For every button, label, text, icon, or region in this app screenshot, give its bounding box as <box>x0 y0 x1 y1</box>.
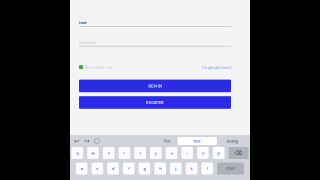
button[interactable]: Paste <box>93 136 101 145</box>
button[interactable]: o <box>197 147 209 159</box>
button[interactable]: t <box>134 147 146 159</box>
staticText: l <box>207 166 208 171</box>
staticText: s <box>96 166 98 171</box>
staticText: a <box>81 166 83 171</box>
button[interactable]: REGISTER <box>79 96 231 109</box>
button[interactable]: l <box>201 162 213 174</box>
staticText: u <box>170 150 172 156</box>
button[interactable]: Redo <box>83 136 91 145</box>
staticText: Test <box>163 138 170 144</box>
staticText: o <box>202 150 204 156</box>
staticText: SIGN IN <box>148 83 162 88</box>
button[interactable]: ⌫ <box>228 147 248 159</box>
button[interactable]: e <box>103 147 114 159</box>
staticText: g <box>143 166 145 171</box>
button[interactable]: Forgot password <box>202 64 231 70</box>
button[interactable]: i <box>181 147 193 159</box>
staticText: y <box>155 150 157 156</box>
button[interactable]: g <box>139 162 150 174</box>
button[interactable]: j <box>170 162 182 174</box>
staticText: return <box>226 167 235 170</box>
staticText: r <box>123 150 125 156</box>
staticText: k <box>191 166 193 171</box>
staticText: d <box>112 166 114 171</box>
button[interactable]: d <box>107 162 119 174</box>
button[interactable]: y <box>150 147 162 159</box>
button[interactable]: r <box>119 147 130 159</box>
button[interactable]: w <box>87 147 99 159</box>
staticText: i <box>187 150 188 156</box>
staticText: ↩ <box>74 137 80 145</box>
staticText: p <box>218 150 220 156</box>
button[interactable]: a <box>76 162 87 174</box>
button[interactable]: Remember me <box>79 64 112 70</box>
button[interactable]: Undo <box>73 136 81 145</box>
staticText: q <box>76 150 78 156</box>
staticText: w <box>91 150 94 156</box>
button[interactable]: s <box>92 162 103 174</box>
staticText: test <box>79 20 87 25</box>
staticText: j <box>175 166 176 171</box>
button[interactable]: q <box>71 147 83 159</box>
button[interactable]: return <box>217 162 244 174</box>
staticText: Forgot password <box>202 64 231 70</box>
button[interactable]: f <box>123 162 135 174</box>
staticText: f <box>128 166 129 171</box>
button[interactable]: k <box>186 162 197 174</box>
button[interactable]: “test” <box>177 137 217 145</box>
button[interactable]: h <box>154 162 166 174</box>
staticText: “test” <box>193 138 202 144</box>
staticText: ⌫ <box>234 150 242 156</box>
button[interactable]: SIGN IN <box>79 80 231 92</box>
button[interactable]: u <box>166 147 177 159</box>
staticText: ↪ <box>84 137 90 145</box>
staticText: Password <box>79 39 96 45</box>
staticText: e <box>108 150 110 156</box>
staticText: Remember me <box>85 64 112 70</box>
staticText: REGISTER <box>146 100 164 105</box>
staticText: h <box>159 166 161 171</box>
button[interactable]: Test <box>157 137 177 145</box>
staticText: testing <box>226 138 237 144</box>
button[interactable]: testing <box>218 137 246 145</box>
button[interactable]: p <box>213 147 224 159</box>
staticText: t <box>140 150 141 156</box>
